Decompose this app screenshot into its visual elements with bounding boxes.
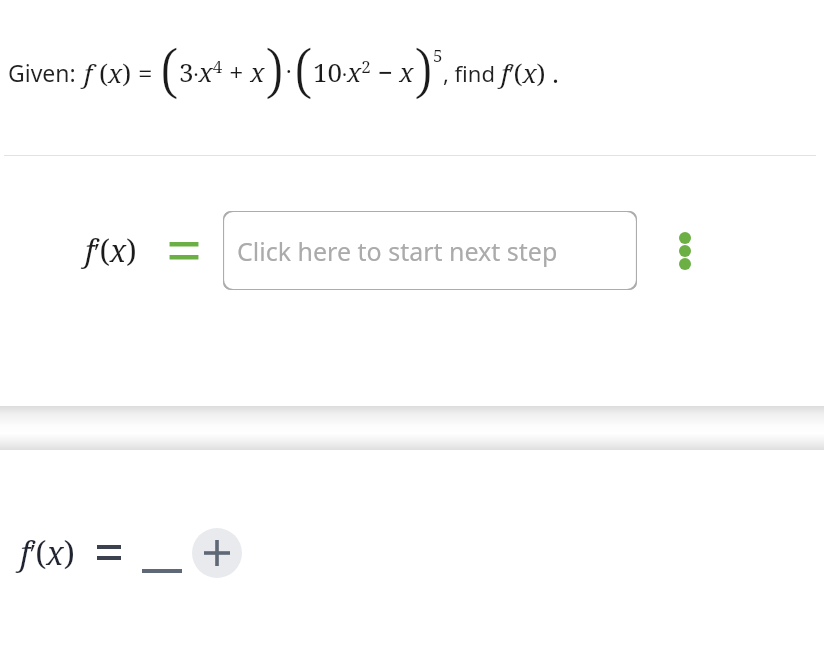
staticText: 5 (433, 44, 443, 67)
staticText: ) (265, 30, 284, 109)
staticText: ( (294, 30, 313, 109)
button[interactable]: Empty term (141, 533, 183, 573)
staticText: Click here to start next step (237, 234, 558, 268)
staticText: ) (414, 30, 433, 109)
button[interactable]: Click here to start next step (223, 211, 637, 290)
button[interactable]: Add term (192, 528, 242, 578)
staticText: f (x) = (84, 55, 160, 90)
button[interactable]: More options (663, 223, 707, 279)
staticText: , find (443, 58, 501, 88)
staticText: ( (160, 30, 179, 109)
staticText: Given: (8, 57, 76, 88)
staticText: f′(x) . (501, 55, 559, 90)
staticText: f′(x) (85, 230, 137, 271)
staticText: 10·x2 − x (313, 54, 414, 89)
staticText: 3·x4 + x (179, 54, 265, 89)
staticText: · (286, 55, 292, 85)
staticText: f′(x) (20, 531, 75, 575)
